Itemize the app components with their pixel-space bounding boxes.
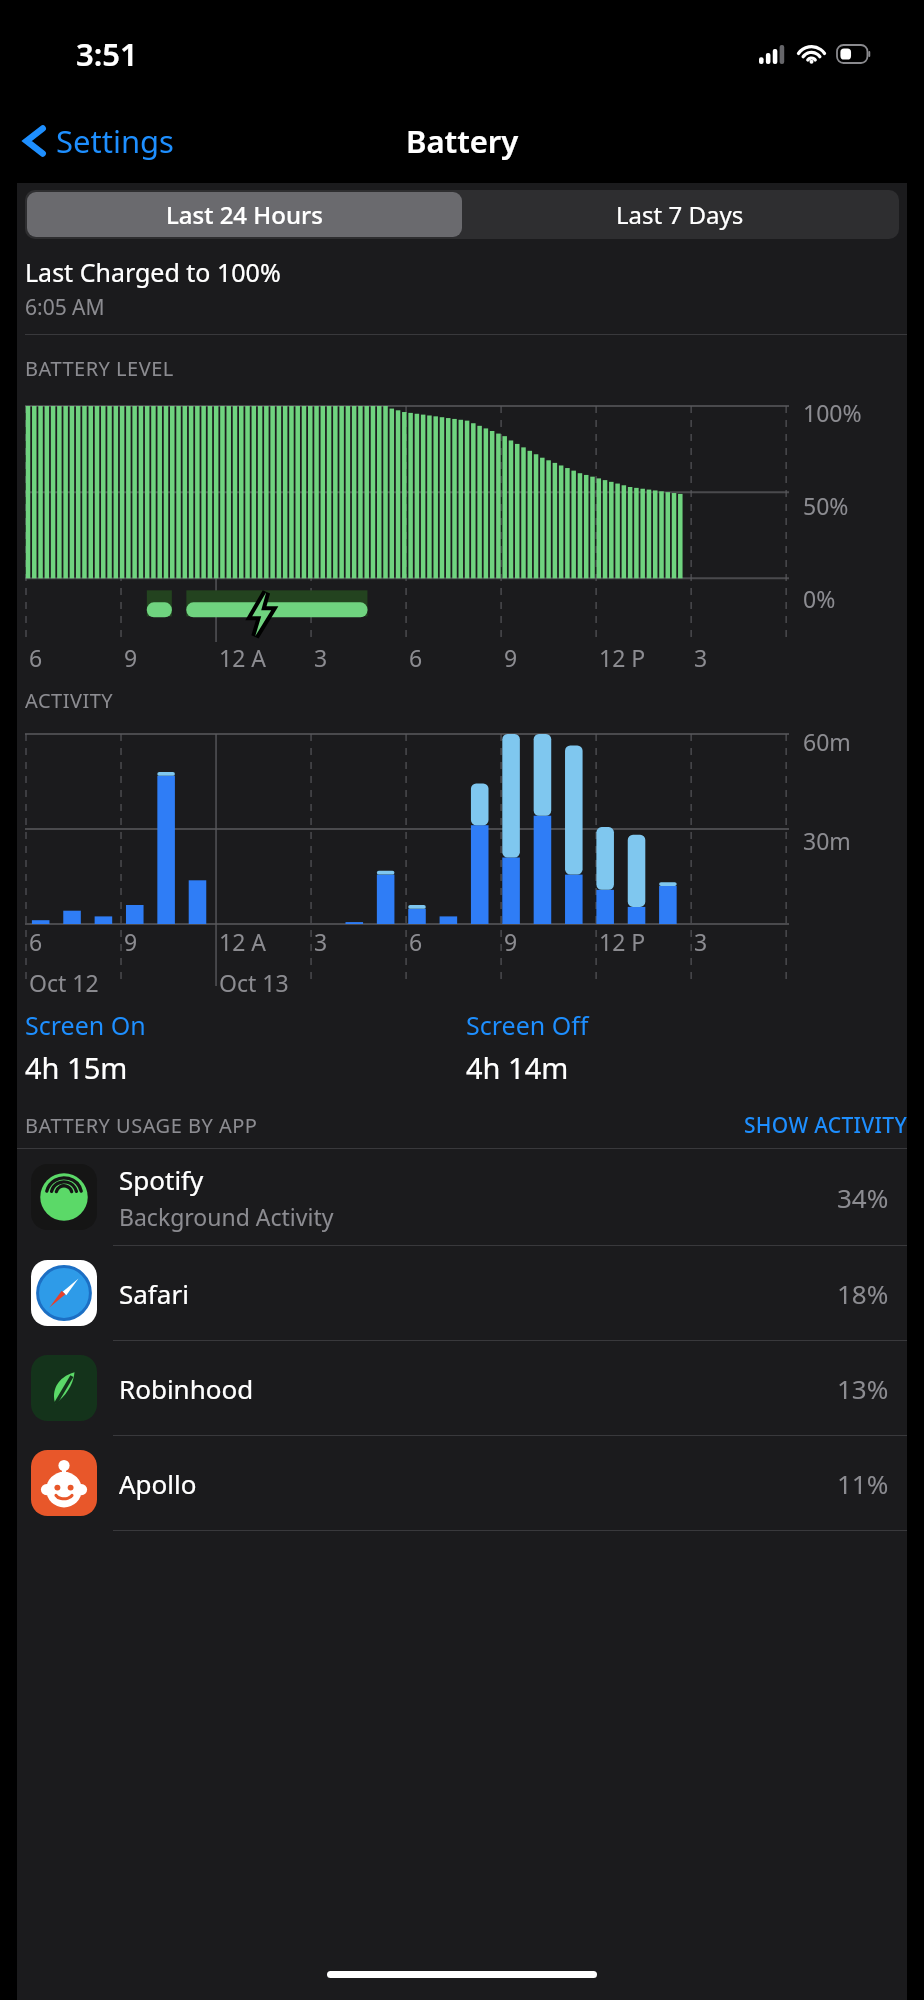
staticText: Apollo (119, 1466, 197, 1501)
button[interactable]: Settings (18, 112, 180, 170)
staticText: Screen Off (466, 1008, 589, 1042)
staticText: 6 (409, 926, 423, 957)
staticText: 9 (124, 642, 138, 673)
staticText: 0% (803, 583, 836, 614)
staticText: 60m (803, 726, 851, 757)
staticText: Settings (56, 120, 174, 162)
staticText: Last 7 Days (616, 198, 744, 231)
button[interactable]: Last 24 Hours (27, 192, 462, 237)
staticText: 12 P (599, 926, 646, 957)
staticText: Safari (119, 1276, 189, 1311)
staticText: 13% (837, 1371, 889, 1406)
staticText: 3:51 (76, 33, 138, 75)
button[interactable]: Spotify (17, 1149, 907, 1245)
staticText: 18% (837, 1276, 889, 1311)
staticText: 12 A (219, 642, 266, 673)
staticText: Last Charged to 100% (25, 255, 281, 289)
staticText: Robinhood (119, 1371, 254, 1406)
staticText: BATTERY USAGE BY APP (25, 1112, 258, 1139)
staticText: Last 24 Hours (166, 198, 323, 231)
staticText: 3 (314, 642, 328, 673)
staticText: BATTERY LEVEL (25, 355, 174, 382)
staticText: 6 (29, 642, 43, 673)
staticText: 9 (504, 926, 518, 957)
staticText: 6 (409, 642, 423, 673)
staticText: 34% (837, 1180, 889, 1215)
staticText: 50% (803, 490, 849, 521)
staticText: 6:05 AM (25, 293, 105, 322)
staticText: Oct 12 (29, 967, 99, 998)
staticText: Screen On (25, 1008, 146, 1042)
staticText: ACTIVITY (25, 687, 114, 714)
staticText: SHOW ACTIVITY (744, 1111, 907, 1140)
staticText: 9 (124, 926, 138, 957)
staticText: 4h 15m (25, 1048, 128, 1087)
staticText: 6 (29, 926, 43, 957)
staticText: 12 A (219, 926, 266, 957)
button[interactable]: Robinhood (17, 1341, 907, 1435)
staticText: 3 (694, 642, 708, 673)
button[interactable]: Safari (17, 1246, 907, 1340)
staticText: 9 (504, 642, 518, 673)
staticText: Background Activity (119, 1201, 334, 1232)
staticText: 3 (694, 926, 708, 957)
staticText: Battery (406, 120, 519, 162)
staticText: 100% (803, 397, 862, 428)
button[interactable]: Apollo (17, 1436, 907, 1530)
staticText: 3 (314, 926, 328, 957)
staticText: 11% (837, 1466, 889, 1501)
button[interactable]: SHOW ACTIVITY (744, 1111, 907, 1140)
staticText: Oct 13 (219, 967, 289, 998)
staticText: 30m (803, 825, 851, 856)
staticText: 12 P (599, 642, 646, 673)
staticText: 4h 14m (466, 1048, 569, 1087)
staticText: Spotify (119, 1162, 204, 1197)
button[interactable]: Last 7 Days (462, 192, 897, 237)
